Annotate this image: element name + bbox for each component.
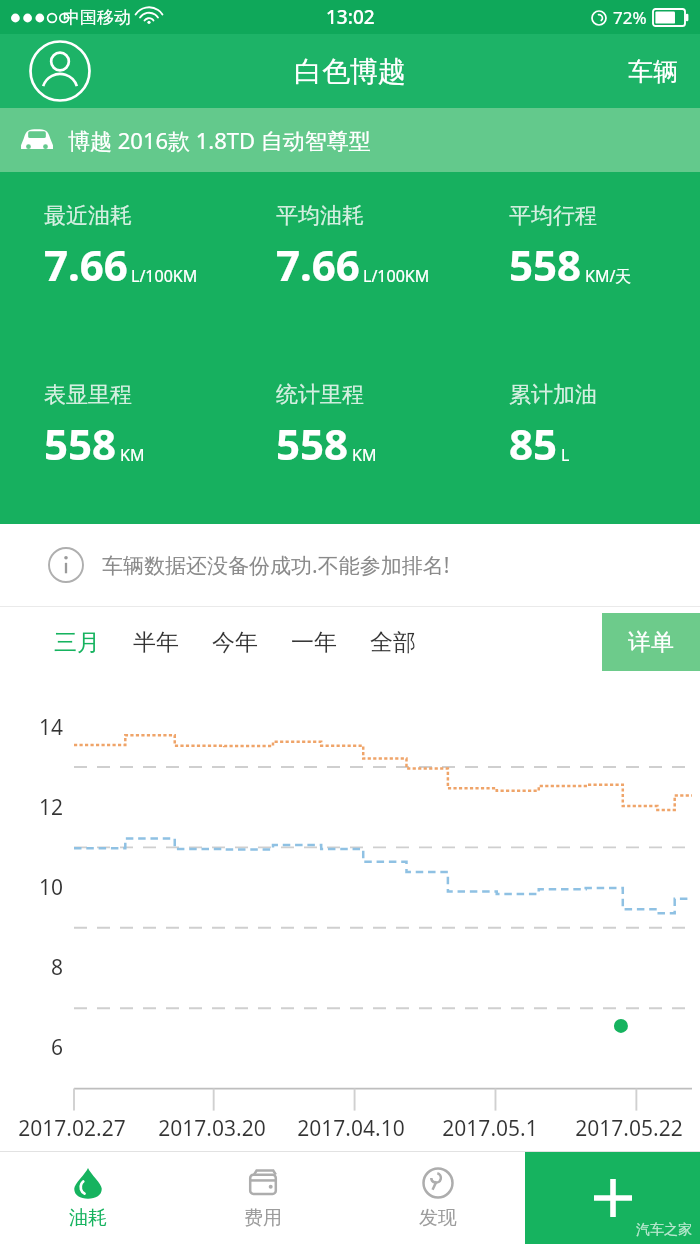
staticText: 2017.02.27	[18, 1114, 126, 1143]
button[interactable]: 统计里程	[234, 381, 467, 472]
staticText: 一年	[291, 628, 337, 657]
staticText: 2017.03.20	[158, 1114, 266, 1143]
staticText: 72%	[613, 6, 647, 29]
staticText: 车辆数据还没备份成功.不能参加排名!	[102, 551, 450, 580]
button[interactable]: 今年	[212, 622, 258, 663]
button[interactable]: 车辆	[606, 42, 700, 101]
staticText: L/100KM	[131, 265, 198, 287]
button[interactable]: 发现	[350, 1152, 525, 1244]
staticText: 全部	[370, 628, 416, 657]
staticText: 油耗	[69, 1206, 107, 1230]
staticText: 博越 2016款 1.8TD 自动智尊型	[68, 125, 371, 155]
button[interactable]: 费用	[175, 1152, 350, 1244]
staticText: 半年	[133, 628, 179, 657]
staticText: 7.66	[276, 236, 360, 293]
staticText: 2017.05.1	[442, 1114, 538, 1143]
staticText: 85	[509, 415, 558, 472]
button[interactable]: Add record	[525, 1152, 700, 1244]
button[interactable]: 累计加油	[467, 381, 700, 472]
button[interactable]: 三月	[54, 622, 100, 663]
staticText: 558	[509, 236, 582, 293]
staticText: 平均油耗	[276, 202, 364, 230]
staticText: 累计加油	[509, 381, 597, 409]
staticText: 13:02	[326, 4, 375, 30]
staticText: 平均行程	[509, 202, 597, 230]
button[interactable]: 表显里程	[0, 381, 234, 472]
staticText: 2017.05.22	[575, 1114, 683, 1143]
button[interactable]: 博越 2016款 1.8TD 自动智尊型	[0, 108, 700, 172]
staticText: 表显里程	[44, 381, 132, 409]
staticText: 中国移动	[63, 7, 131, 28]
button[interactable]: Profile	[28, 39, 92, 103]
staticText: 统计里程	[276, 381, 364, 409]
staticText: 发现	[419, 1206, 457, 1230]
staticText: 6	[51, 1033, 64, 1062]
staticText: 12	[39, 793, 64, 822]
button[interactable]: 油耗	[0, 1152, 175, 1244]
staticText: 10	[39, 873, 64, 902]
staticText: KM	[120, 444, 145, 466]
staticText: 三月	[54, 628, 100, 657]
staticText: 558	[44, 415, 117, 472]
button[interactable]: 半年	[133, 622, 179, 663]
button[interactable]: 车辆数据还没备份成功.不能参加排名!	[0, 524, 700, 606]
staticText: 2017.04.10	[297, 1114, 405, 1143]
button[interactable]: 平均油耗	[234, 202, 467, 293]
staticText: 最近油耗	[44, 202, 132, 230]
staticText: 今年	[212, 628, 258, 657]
button[interactable]: 全部	[370, 622, 416, 663]
staticText: KM/天	[585, 265, 632, 287]
staticText: 7.66	[44, 236, 128, 293]
staticText: L	[561, 444, 570, 466]
staticText: 8	[51, 953, 64, 982]
button[interactable]: 详单	[602, 613, 700, 671]
staticText: 车辆	[628, 56, 678, 87]
staticText: L/100KM	[363, 265, 430, 287]
button[interactable]: 一年	[291, 622, 337, 663]
staticText: 558	[276, 415, 349, 472]
staticText: 费用	[244, 1206, 282, 1230]
staticText: 汽车之家	[636, 1221, 692, 1239]
staticText: 14	[39, 713, 64, 742]
staticText: 详单	[628, 628, 674, 657]
button[interactable]: 平均行程	[467, 202, 700, 293]
staticText: KM	[352, 444, 377, 466]
button[interactable]: 最近油耗	[0, 202, 234, 293]
staticText: 白色博越	[294, 54, 406, 89]
